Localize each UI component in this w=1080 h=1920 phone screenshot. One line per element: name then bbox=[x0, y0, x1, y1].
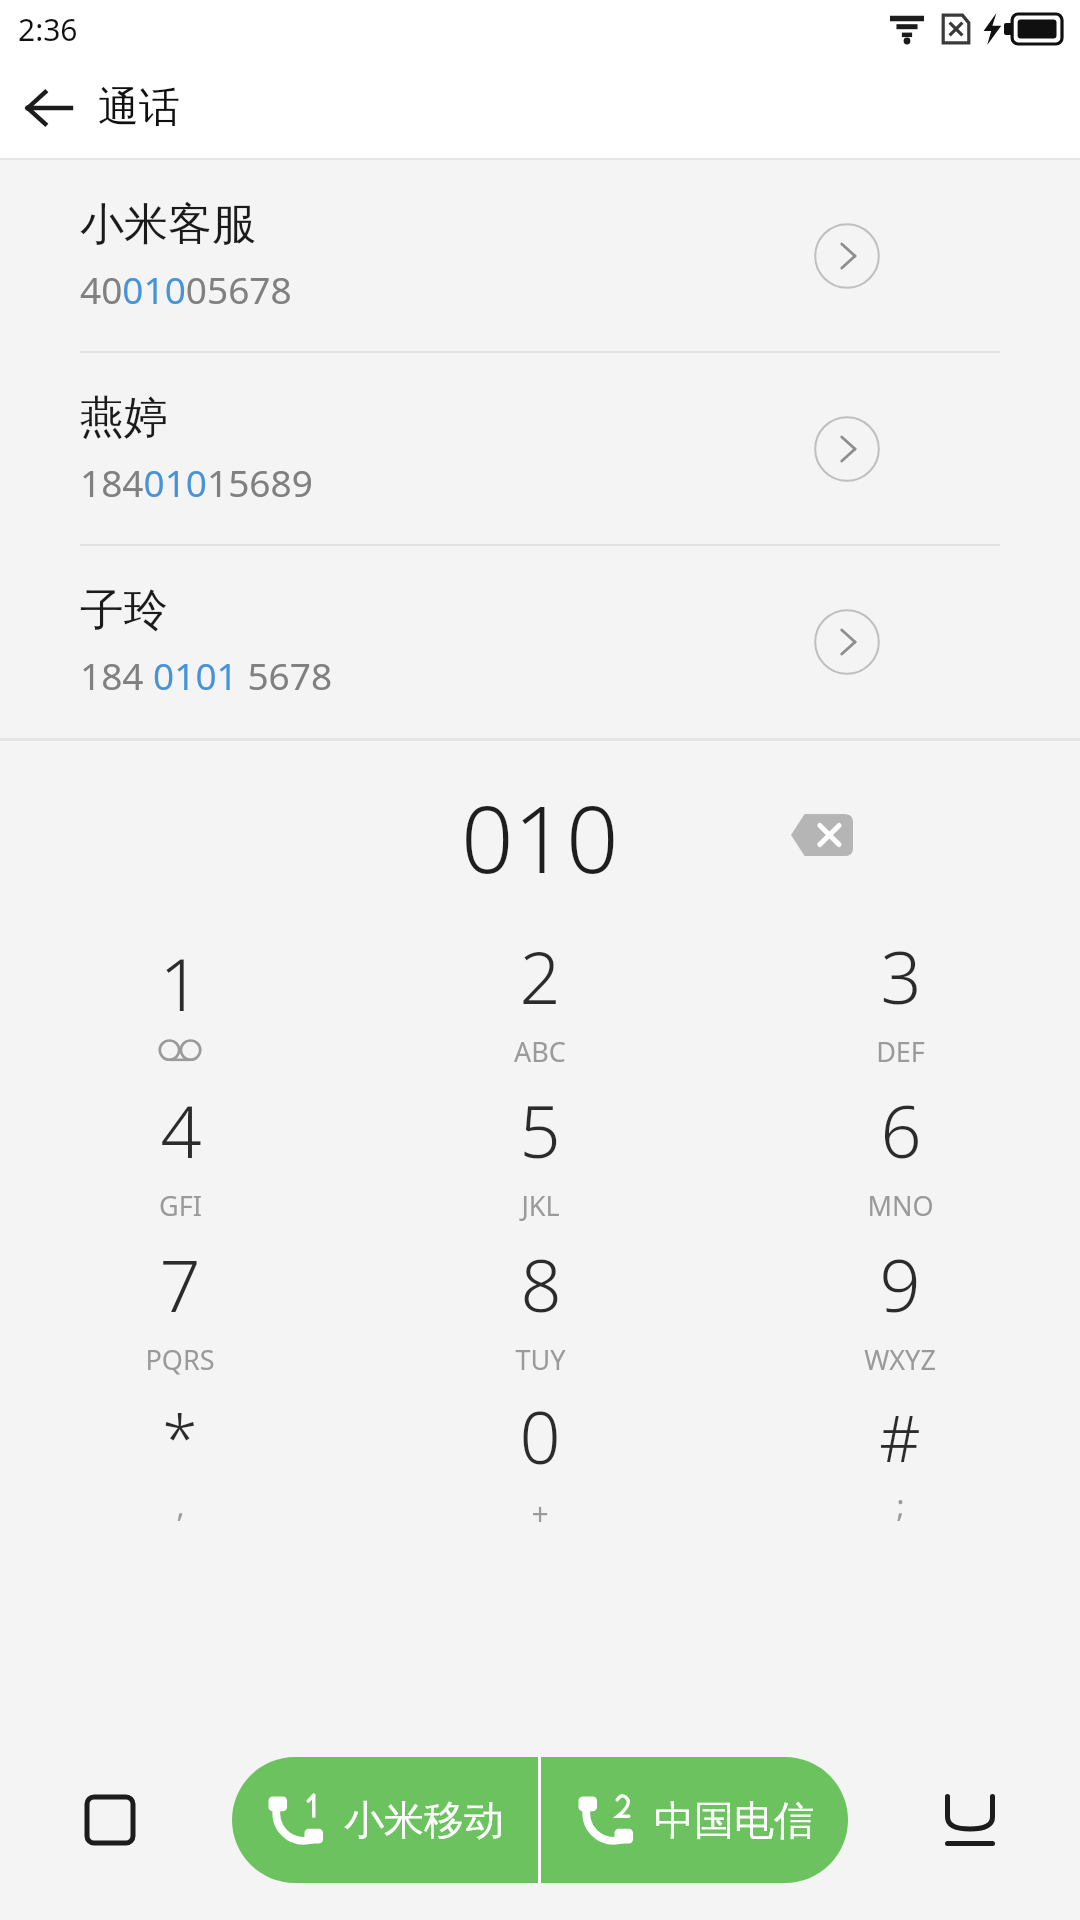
button[interactable]: 6 bbox=[720, 1075, 1080, 1229]
button[interactable]: 4 bbox=[0, 1075, 360, 1229]
staticText: 6 bbox=[880, 1081, 922, 1179]
staticText: WXYZ bbox=[864, 1341, 936, 1378]
staticText: 8 bbox=[520, 1235, 562, 1333]
staticText: 3 bbox=[880, 927, 922, 1025]
staticText: GFI bbox=[159, 1187, 202, 1224]
staticText: TUY bbox=[515, 1341, 566, 1378]
staticText: ABC bbox=[514, 1033, 566, 1070]
button[interactable]: 7 bbox=[0, 1229, 360, 1383]
button[interactable]: 9 bbox=[720, 1229, 1080, 1383]
staticText: JKL bbox=[521, 1187, 560, 1224]
button[interactable]: 3 bbox=[720, 921, 1080, 1075]
button[interactable]: Open contact details bbox=[814, 223, 880, 289]
staticText: 010 bbox=[461, 775, 619, 900]
button[interactable]: 小米移动 bbox=[232, 1757, 538, 1883]
staticText: PQRS bbox=[145, 1341, 215, 1378]
staticText: 通话 bbox=[98, 82, 180, 134]
staticText: 1 bbox=[159, 934, 201, 1032]
staticText: 2 bbox=[519, 927, 561, 1025]
staticText: 子玲 bbox=[80, 583, 168, 638]
staticText: MNO bbox=[867, 1187, 934, 1224]
button[interactable]: 中国电信 bbox=[541, 1757, 848, 1883]
button[interactable]: Backspace bbox=[786, 807, 858, 863]
staticText: 小米客服 bbox=[80, 197, 256, 252]
staticText: DEF bbox=[876, 1033, 925, 1070]
button[interactable]: 0 bbox=[360, 1383, 720, 1537]
button[interactable]: Hide keypad bbox=[928, 1778, 1012, 1862]
button[interactable]: # bbox=[720, 1383, 1080, 1537]
button[interactable]: 燕婷 bbox=[0, 353, 1080, 544]
staticText: 5 bbox=[519, 1081, 561, 1179]
staticText: 中国电信 bbox=[654, 1795, 814, 1845]
staticText: # bbox=[879, 1394, 921, 1481]
staticText: 0 bbox=[519, 1387, 561, 1485]
button[interactable]: 8 bbox=[360, 1229, 720, 1383]
staticText: 9 bbox=[879, 1235, 921, 1333]
button[interactable]: * bbox=[0, 1383, 360, 1537]
button[interactable]: 小米客服 bbox=[0, 160, 1080, 351]
staticText: 2:36 bbox=[18, 9, 78, 50]
staticText: , bbox=[176, 1485, 185, 1526]
staticText: * bbox=[162, 1394, 198, 1481]
button[interactable]: Recents bbox=[68, 1778, 152, 1862]
staticText: + bbox=[531, 1493, 549, 1534]
staticText: ; bbox=[896, 1485, 905, 1526]
staticText: 4001005678 bbox=[80, 264, 292, 314]
button[interactable]: 1 bbox=[0, 921, 360, 1075]
button[interactable]: Open contact details bbox=[814, 416, 880, 482]
staticText: 4 bbox=[160, 1081, 202, 1179]
button[interactable]: Back bbox=[10, 70, 86, 146]
staticText: 18401015689 bbox=[80, 457, 313, 507]
button[interactable]: 5 bbox=[360, 1075, 720, 1229]
button[interactable]: 子玲 bbox=[0, 546, 1080, 737]
staticText: 小米移动 bbox=[344, 1795, 504, 1845]
staticText: 184 0101 5678 bbox=[80, 650, 333, 700]
button[interactable]: Open contact details bbox=[814, 609, 880, 675]
button[interactable]: 2 bbox=[360, 921, 720, 1075]
staticText: 7 bbox=[159, 1235, 201, 1333]
staticText: 燕婷 bbox=[80, 390, 168, 445]
